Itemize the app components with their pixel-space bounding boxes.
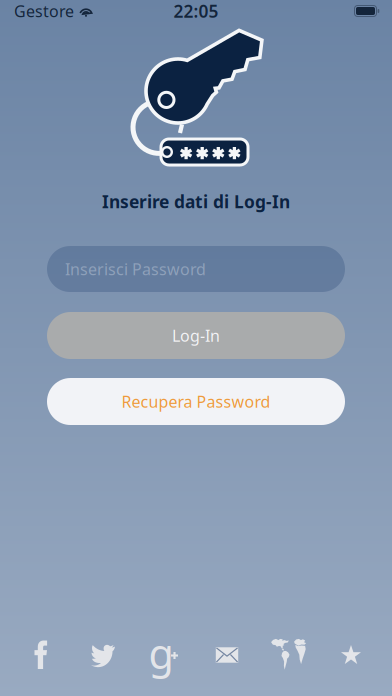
button[interactable]: Twitter <box>72 635 134 675</box>
button[interactable]: Google Plus <box>134 635 196 675</box>
staticText: Inserire dati di Log-In <box>102 190 290 213</box>
staticText: g <box>148 626 173 680</box>
button[interactable]: Inserisci Password <box>47 246 345 292</box>
staticText: Inserisci Password <box>65 258 206 280</box>
staticText: Log-In <box>172 325 220 346</box>
button[interactable]: Favourites <box>320 635 382 675</box>
staticText: Recupera Password <box>121 391 270 412</box>
button[interactable]: Website <box>258 635 320 675</box>
button[interactable]: Recupera Password <box>47 378 345 425</box>
staticText: 22:05 <box>173 0 218 22</box>
button[interactable]: Log-In <box>47 312 345 359</box>
button[interactable]: Email <box>196 635 258 675</box>
button[interactable]: Facebook <box>10 635 72 675</box>
staticText: Gestore <box>14 0 74 22</box>
